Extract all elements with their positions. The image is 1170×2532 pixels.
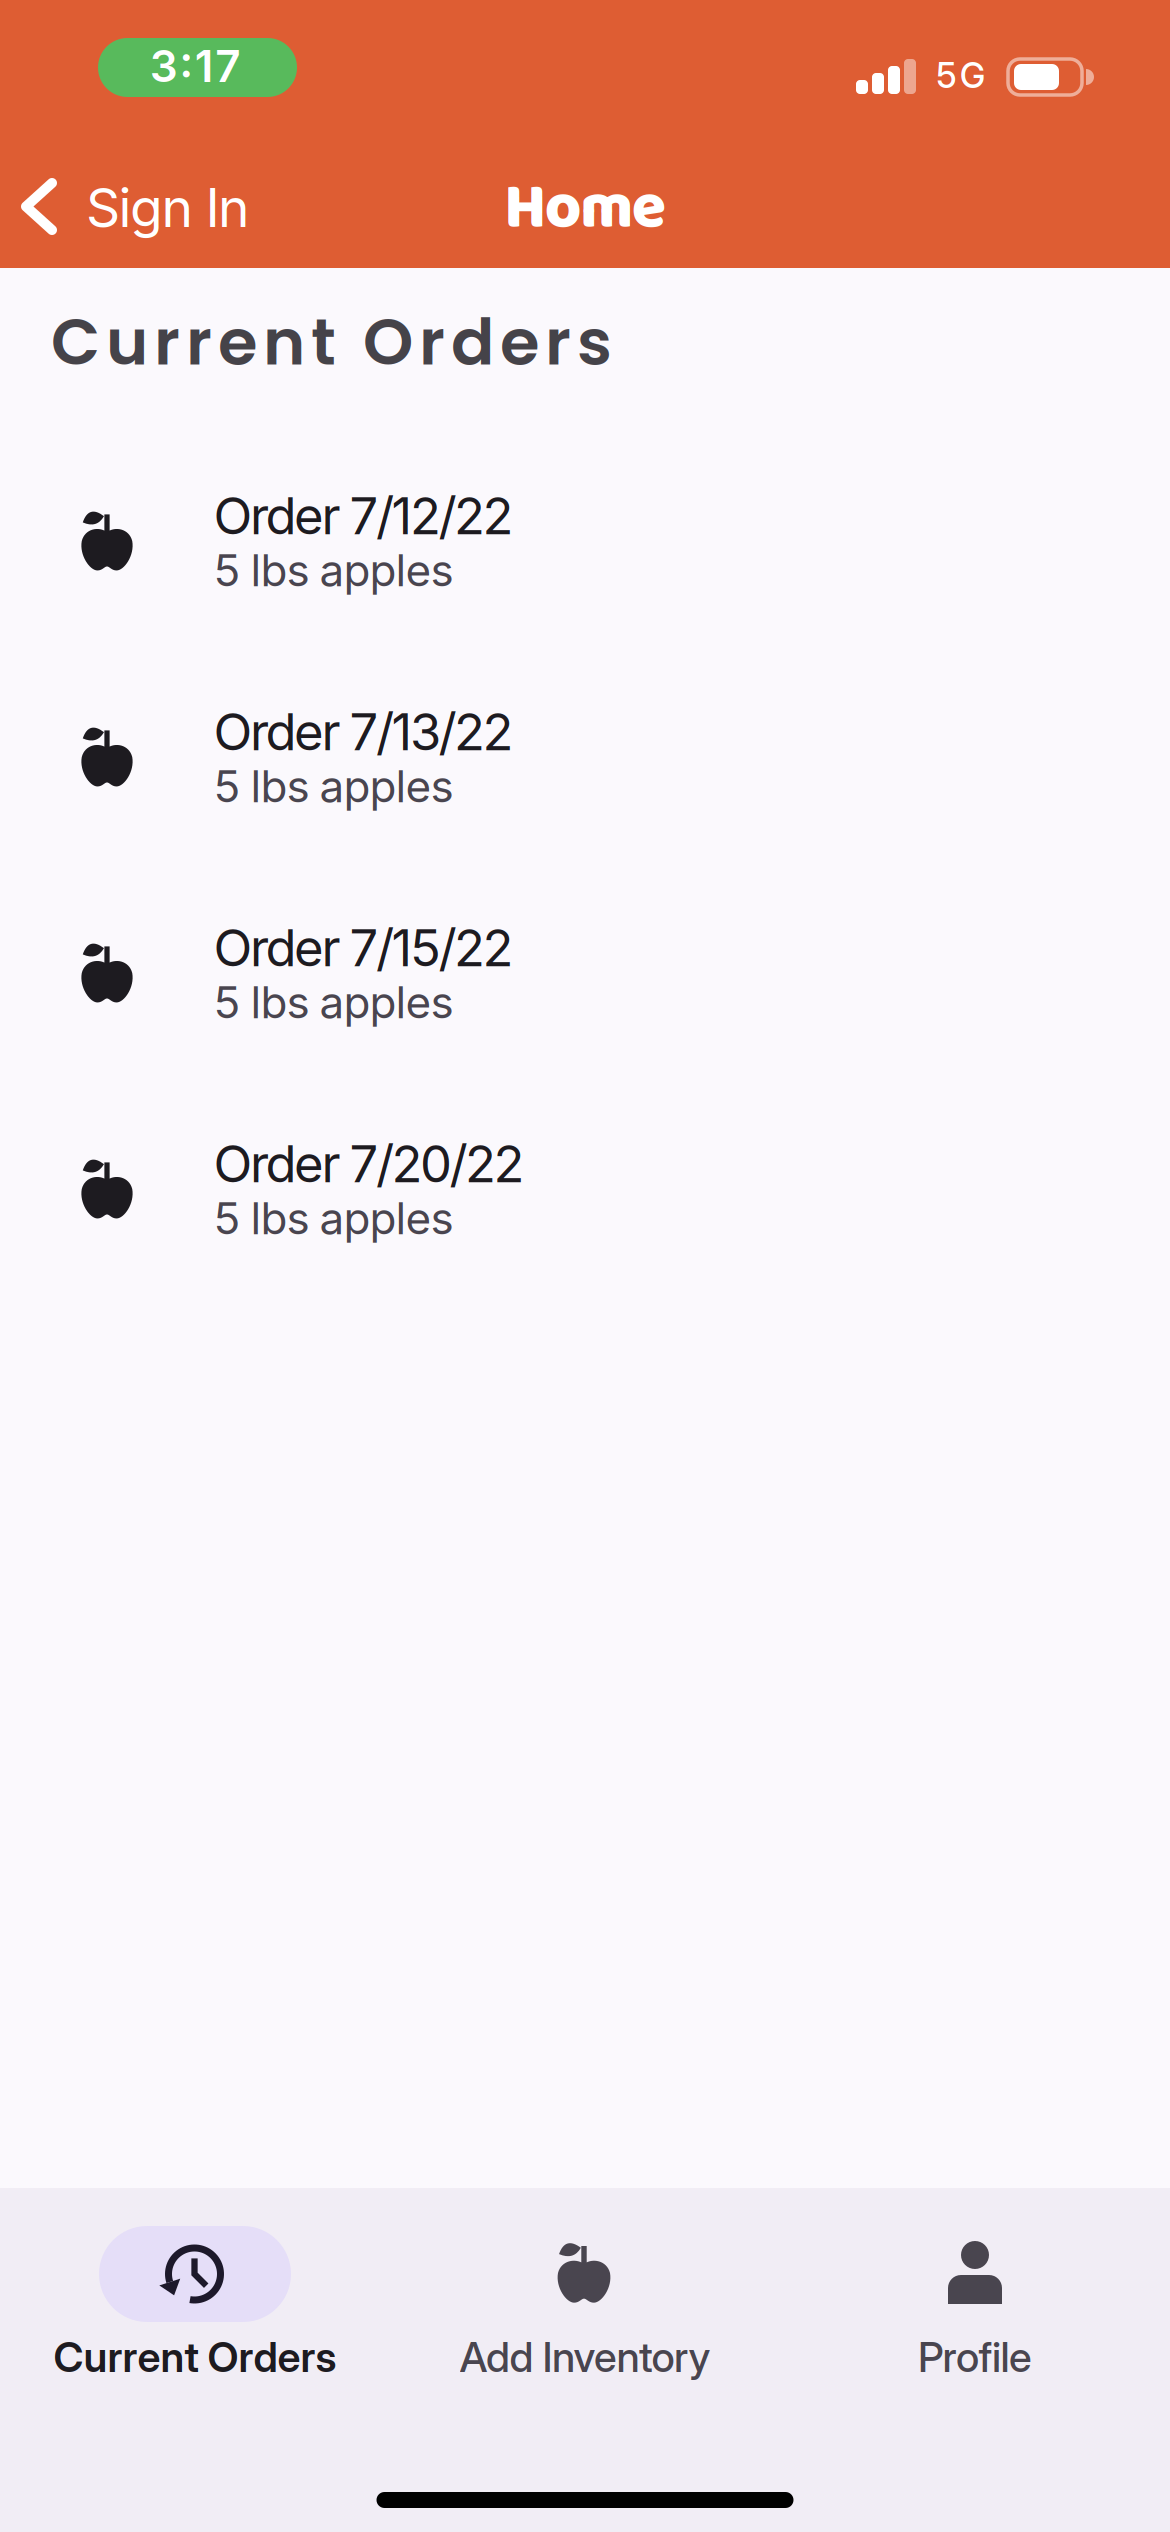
staticText: Current Orders [53, 2333, 336, 2381]
staticText: Order 7/20/22 [213, 1134, 524, 1194]
staticText: Home [504, 159, 666, 259]
staticText: 5 lbs apples [213, 1192, 453, 1244]
staticText: 5G [936, 55, 986, 96]
staticText: Order 7/15/22 [213, 918, 513, 978]
button[interactable]: Order 7/20/22 [0, 1085, 1170, 1301]
staticText: 5 lbs apples [213, 760, 453, 812]
staticText: Order 7/13/22 [213, 702, 513, 762]
button[interactable]: Add Inventory [390, 2188, 780, 2532]
staticText: Add Inventory [459, 2333, 710, 2381]
staticText: 5 lbs apples [213, 976, 453, 1028]
staticText: 5 lbs apples [213, 544, 453, 596]
staticText: Order 7/12/22 [213, 486, 513, 546]
button[interactable]: Order 7/12/22 [0, 437, 1170, 653]
button[interactable]: Order 7/15/22 [0, 869, 1170, 1085]
button[interactable]: Order 7/13/22 [0, 653, 1170, 869]
button[interactable]: Current Orders [0, 2188, 390, 2532]
staticText: Sign In [86, 176, 250, 239]
button[interactable]: Profile [780, 2188, 1170, 2532]
staticText: Profile [918, 2333, 1032, 2381]
button[interactable]: Sign In [10, 171, 380, 241]
staticText: Current Orders [51, 297, 612, 387]
staticText: 3:17 [150, 40, 240, 92]
